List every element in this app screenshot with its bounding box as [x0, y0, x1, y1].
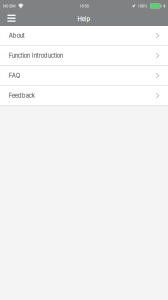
button[interactable]: Feedback — [0, 86, 168, 106]
staticText: Feedback — [9, 92, 35, 99]
staticText: 100% — [138, 4, 148, 8]
button[interactable]: Menu — [0, 12, 23, 26]
staticText: FAQ — [9, 72, 20, 79]
button[interactable]: About — [0, 26, 168, 46]
staticText: No SIM — [3, 4, 16, 8]
staticText: Function Introduction — [9, 52, 63, 59]
staticText: Help — [77, 15, 90, 23]
button[interactable]: FAQ — [0, 66, 168, 86]
staticText: About — [9, 32, 25, 39]
staticText: 16:58 — [79, 4, 88, 8]
button[interactable]: Function Introduction — [0, 46, 168, 66]
